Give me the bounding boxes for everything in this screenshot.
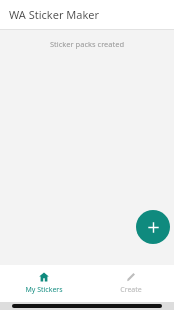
button[interactable]: Create sticker pack bbox=[136, 210, 170, 244]
button[interactable]: My Stickers bbox=[0, 268, 87, 299]
staticText: My Stickers bbox=[25, 285, 63, 295]
staticText: Sticker packs created bbox=[0, 39, 174, 49]
staticText: WA Sticker Maker bbox=[9, 7, 100, 22]
staticText: Create bbox=[120, 285, 142, 295]
button[interactable]: Create bbox=[87, 268, 174, 299]
